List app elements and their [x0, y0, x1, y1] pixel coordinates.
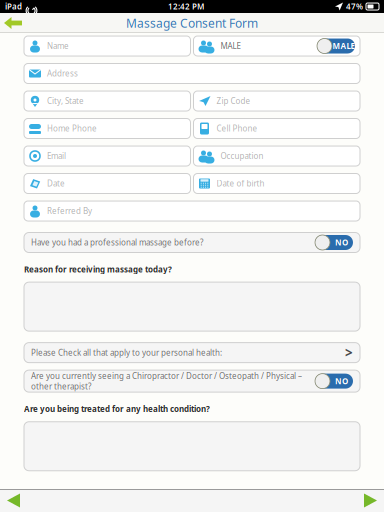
staticText: Home Phone [47, 123, 97, 134]
button[interactable]: Address [24, 63, 360, 83]
staticText: Email [47, 151, 66, 161]
staticText: Zip Code [216, 96, 250, 106]
staticText: City, State [47, 96, 84, 106]
staticText: Name [47, 41, 69, 51]
button[interactable]: Occupation [193, 146, 360, 166]
staticText: Are you being treated for any health con… [24, 404, 210, 414]
staticText: Are you currently seeing a Chiropractor … [31, 370, 302, 392]
staticText: NO [335, 376, 348, 386]
button[interactable] [24, 422, 360, 471]
staticText: Have you had a professional massage befo… [31, 237, 203, 248]
button[interactable] [24, 282, 360, 331]
button[interactable]: Previous [0, 493, 27, 507]
button[interactable]: Name [24, 36, 190, 56]
staticText: Referred By [47, 206, 92, 216]
staticText: Reason for receiving massage today? [24, 264, 172, 275]
staticText: > [345, 344, 353, 361]
staticText: Date of birth [216, 178, 264, 189]
button[interactable]: Home Phone [24, 118, 190, 138]
button[interactable]: Are you currently seeing a Chiropractor … [24, 370, 360, 392]
button[interactable]: Date [24, 173, 190, 193]
staticText: MALE [220, 41, 240, 51]
button[interactable]: Date of birth [193, 173, 360, 193]
staticText: Occupation [220, 151, 263, 161]
staticText: Date [47, 178, 65, 189]
button[interactable]: Zip Code [193, 91, 360, 111]
button[interactable]: Next [357, 493, 384, 507]
staticText: Cell Phone [216, 123, 257, 134]
button[interactable]: Have you had a professional massage befo… [24, 232, 360, 252]
button[interactable]: Back [0, 13, 32, 33]
staticText: NO [335, 237, 348, 248]
button[interactable]: Cell Phone [193, 118, 360, 138]
button[interactable]: Referred By [24, 201, 360, 221]
button[interactable]: Email [24, 146, 190, 166]
button[interactable]: Please Check all that apply to your pers… [24, 343, 360, 363]
staticText: Address [47, 68, 78, 79]
staticText: 12:42 PM [168, 1, 204, 12]
staticText: MALE [332, 41, 354, 51]
button[interactable]: City, State [24, 91, 190, 111]
staticText: 47% [346, 1, 363, 12]
staticText: iPad [5, 1, 22, 12]
staticText: Massage Consent Form [126, 15, 258, 31]
staticText: Please Check all that apply to your pers… [31, 347, 222, 358]
